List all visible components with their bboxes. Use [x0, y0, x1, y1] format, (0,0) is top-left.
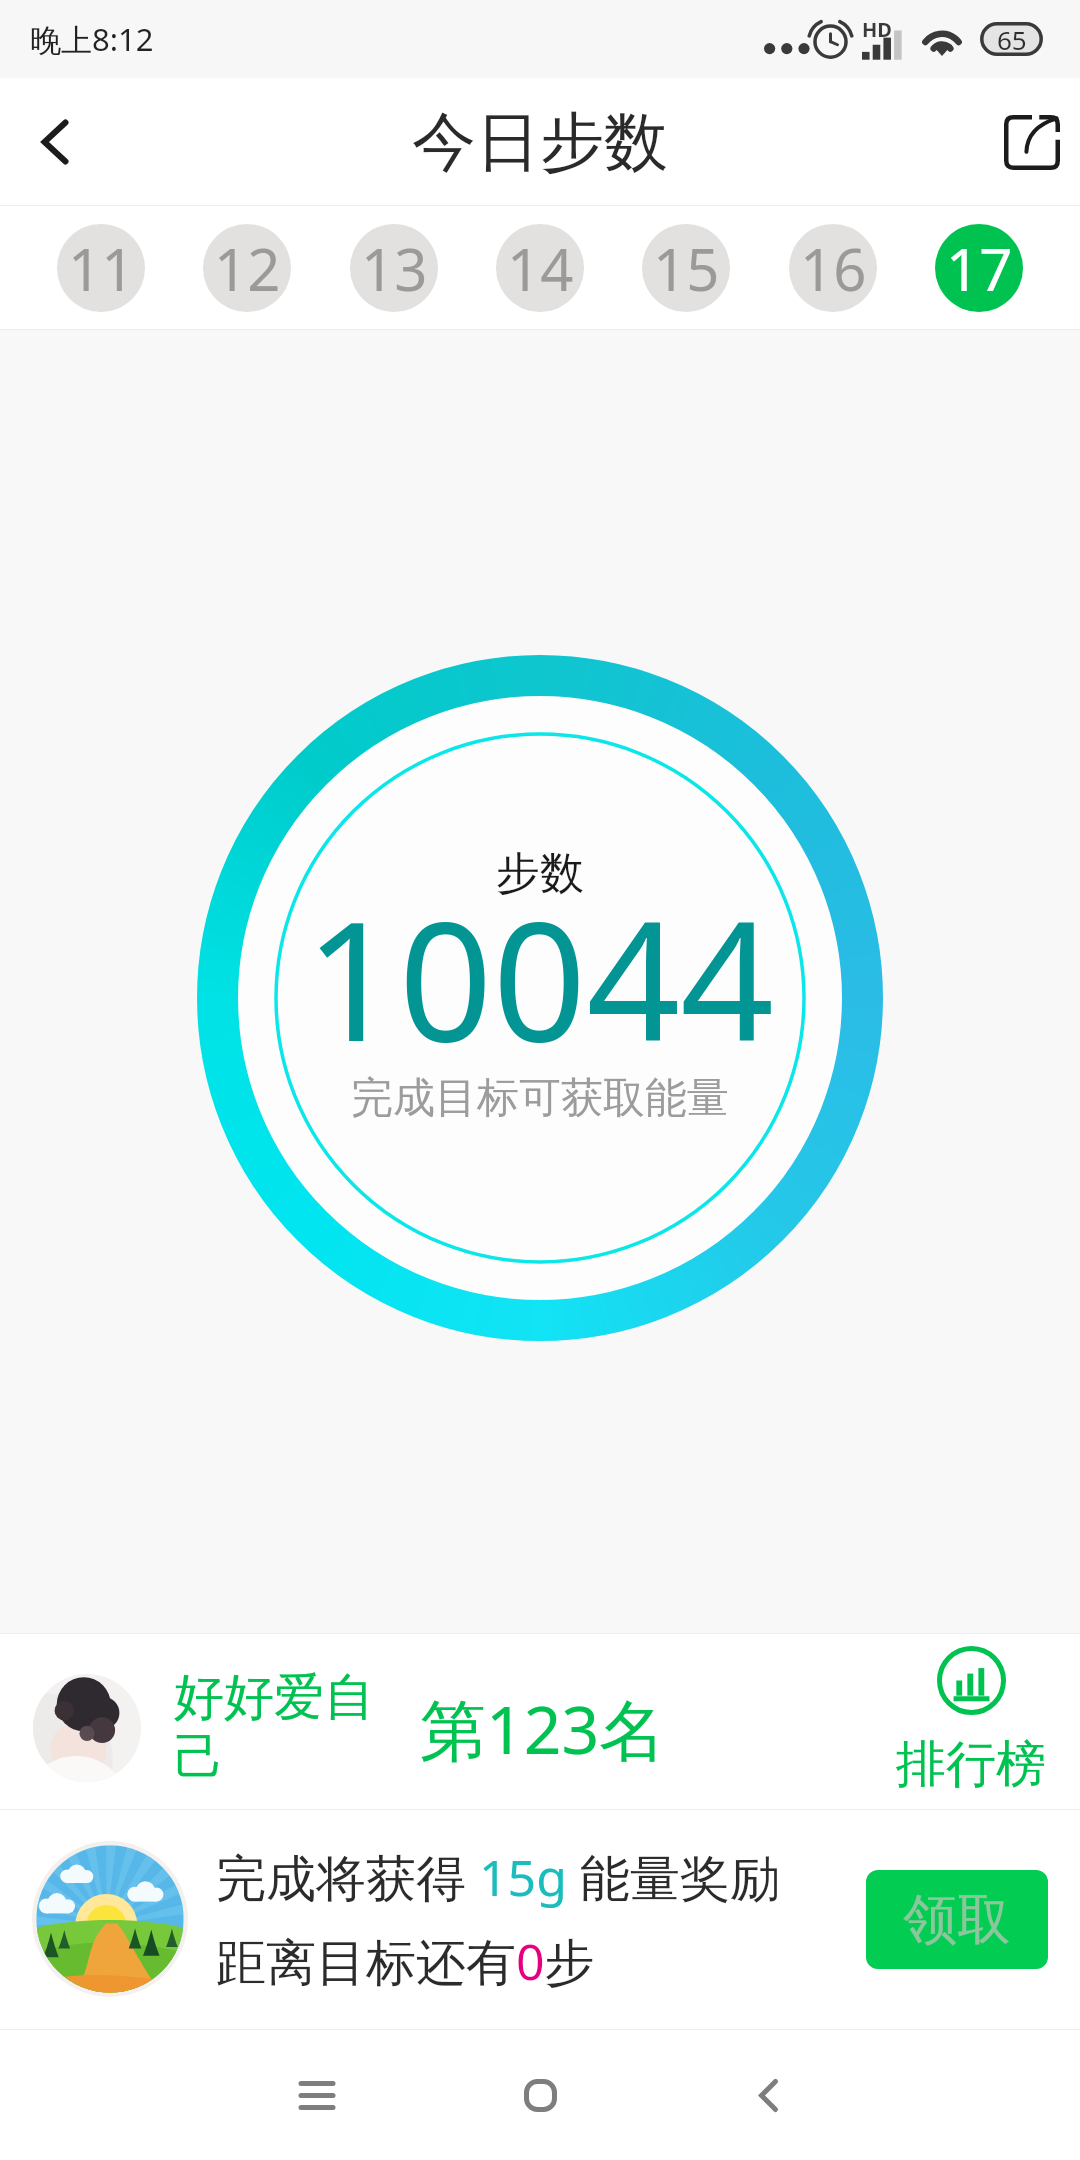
staticText: 完成将获得 15g 能量奖励: [216, 1843, 780, 1911]
staticText: 排行榜: [896, 1733, 1046, 1796]
button[interactable]: Back: [0, 78, 110, 206]
staticText: 10044: [305, 866, 775, 1089]
staticText: 11: [68, 229, 135, 308]
button[interactable]: 16: [789, 224, 877, 312]
button[interactable]: 好好爱自己: [0, 1652, 666, 1791]
button[interactable]: Back: [708, 2051, 828, 2139]
button[interactable]: 11: [57, 224, 145, 312]
button[interactable]: 13: [350, 224, 438, 312]
button[interactable]: Home: [480, 2051, 600, 2139]
button[interactable]: 12: [203, 224, 291, 312]
staticText: 晚上8:12: [30, 18, 154, 60]
button[interactable]: 14: [496, 224, 584, 312]
button[interactable]: 排行榜: [886, 1638, 1056, 1804]
staticText: 距离目标还有0步: [216, 1927, 595, 1995]
button[interactable]: 15: [642, 224, 730, 312]
staticText: 步数: [496, 846, 584, 901]
button[interactable]: 17: [935, 224, 1023, 312]
staticText: 17: [946, 229, 1013, 308]
staticText: 12: [214, 229, 281, 308]
staticText: 65: [997, 22, 1027, 56]
staticText: 领取: [903, 1886, 1011, 1954]
staticText: 13: [361, 229, 428, 308]
staticText: 今日步数: [412, 102, 668, 183]
staticText: 16: [800, 229, 867, 308]
button[interactable]: Share: [984, 78, 1080, 206]
button[interactable]: Recents: [257, 2051, 377, 2139]
button[interactable]: 领取: [866, 1870, 1048, 1969]
staticText: 第123名: [420, 1683, 666, 1773]
staticText: 好好爱自己: [174, 1666, 374, 1789]
staticText: HD: [862, 16, 892, 43]
staticText: 完成目标可获取能量: [351, 1072, 729, 1125]
staticText: 15: [653, 229, 720, 308]
staticText: 14: [507, 229, 574, 308]
